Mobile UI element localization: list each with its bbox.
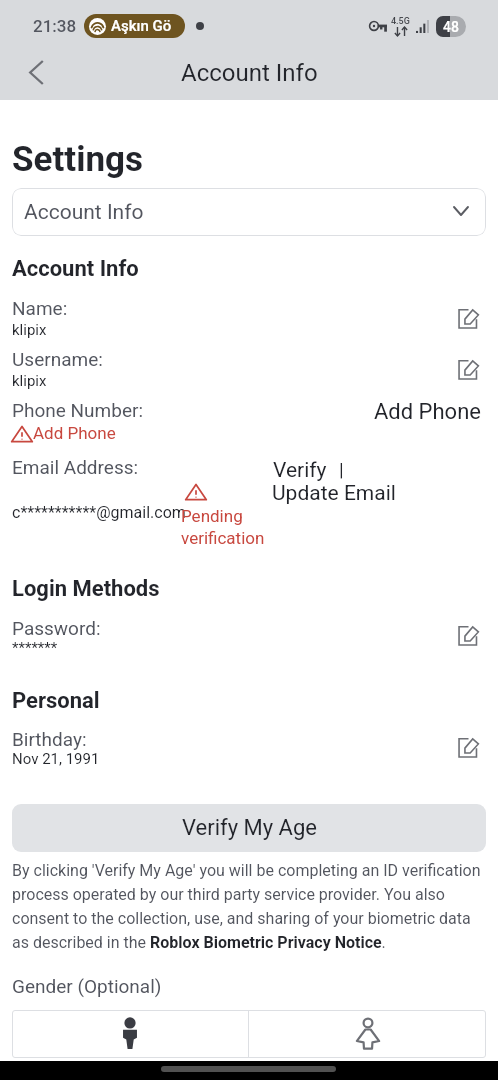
staticText: Pending verification (181, 505, 265, 549)
button[interactable]: Female (249, 1010, 486, 1058)
staticText: Email Address: (12, 456, 139, 478)
staticText: c***********@gmail.com (12, 503, 186, 522)
staticText: Personal (12, 688, 100, 714)
staticText: Name: (12, 297, 68, 319)
button[interactable]: Edit Name (451, 301, 485, 335)
staticText: Username: (12, 348, 103, 370)
button[interactable]: Add Phone (374, 399, 481, 425)
staticText: Add Phone (33, 423, 116, 443)
staticText: ******* (12, 639, 58, 657)
staticText: Verify My Age (182, 815, 317, 841)
staticText: Aşkın Gö (111, 17, 172, 35)
staticText: klipix (12, 321, 47, 339)
staticText: Account Info (181, 59, 318, 87)
staticText: | (339, 458, 344, 480)
staticText: Birthday: (12, 728, 87, 750)
staticText: Login Methods (12, 576, 160, 602)
staticText: Gender (Optional) (12, 975, 162, 997)
staticText: Account Info (12, 256, 139, 282)
staticText: Nov 21, 1991 (12, 750, 100, 768)
staticText: By clicking 'Verify My Age' you will be … (12, 857, 486, 953)
button[interactable]: Update Email (272, 481, 396, 506)
staticText: klipix (12, 372, 47, 390)
button[interactable]: Male (12, 1010, 248, 1058)
staticText: 4.5G (391, 16, 410, 27)
staticText: 21:38 (33, 16, 77, 36)
button[interactable]: Edit Birthday (451, 730, 485, 764)
button[interactable]: Verify My Age (12, 804, 486, 852)
staticText: Password: (12, 617, 101, 639)
button[interactable]: Edit Password (451, 618, 485, 652)
staticText: Settings (12, 139, 143, 180)
staticText: Account Info (24, 200, 144, 225)
staticText: Phone Number: (12, 399, 144, 421)
button[interactable]: Edit Username (451, 352, 485, 386)
button[interactable]: Back (18, 54, 54, 90)
staticText: 48 (443, 19, 459, 35)
button[interactable]: Account Info (12, 188, 486, 236)
button[interactable]: Verify (273, 458, 327, 483)
